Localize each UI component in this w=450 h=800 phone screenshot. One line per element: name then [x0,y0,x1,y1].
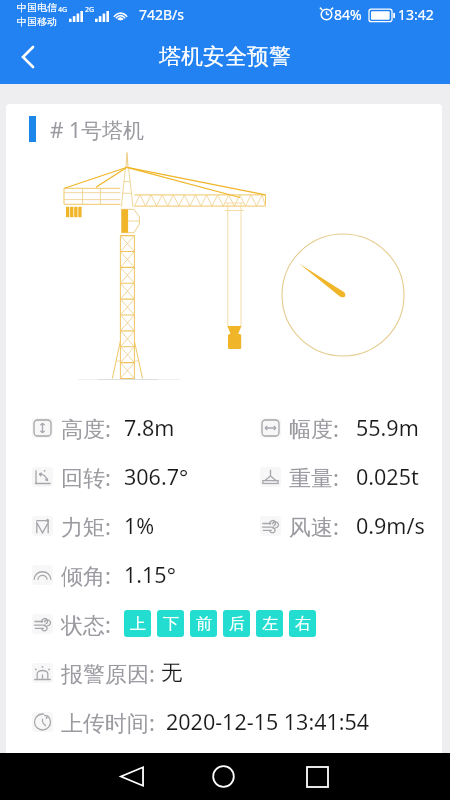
staticText: 下 [163,614,179,634]
staticText: 55.9m [356,413,419,442]
button[interactable]: Home [193,753,253,800]
staticText: 无 [161,659,183,686]
button[interactable]: 后 [223,610,250,637]
button[interactable]: 前 [190,610,217,637]
staticText: 1.15° [124,560,176,589]
button[interactable]: Back [10,39,46,75]
staticText: 力矩: [61,511,111,541]
staticText: 2G [85,5,95,15]
staticText: 重量: [289,462,339,492]
button[interactable]: Back [102,753,162,800]
staticText: 7.8m [124,413,175,442]
staticText: 后 [229,614,245,634]
button[interactable]: 左 [256,610,283,637]
staticText: 塔机安全预警 [159,43,291,71]
button[interactable]: 上 [124,610,151,637]
button[interactable]: Recents [287,753,347,800]
staticText: 13:42 [398,5,434,24]
staticText: 0.9m/s [356,511,425,540]
staticText: 高度: [61,413,111,443]
staticText: 风速: [289,511,339,541]
staticText: 上 [130,614,146,634]
staticText: 回转: [61,462,111,492]
staticText: 742B/s [139,5,185,24]
staticText: 中国电信 [17,1,57,14]
button[interactable]: 右 [289,610,316,637]
staticText: 报警原因: [61,658,155,688]
staticText: 84% [334,5,362,24]
button[interactable]: 下 [157,610,184,637]
staticText: 前 [196,614,212,634]
staticText: 状态: [61,609,111,639]
staticText: 2020-12-15 13:41:54 [166,707,370,736]
staticText: 0.025t [356,462,419,491]
staticText: 上传时间: [61,707,155,737]
staticText: # 1号塔机 [50,116,145,142]
staticText: 中国移动 [17,15,57,28]
staticText: 幅度: [289,413,339,443]
staticText: 1% [124,511,155,540]
staticText: 左 [262,614,278,634]
staticText: 倾角: [61,560,111,590]
staticText: 右 [295,614,311,634]
staticText: 4G [58,5,68,15]
staticText: 306.7° [124,462,189,491]
